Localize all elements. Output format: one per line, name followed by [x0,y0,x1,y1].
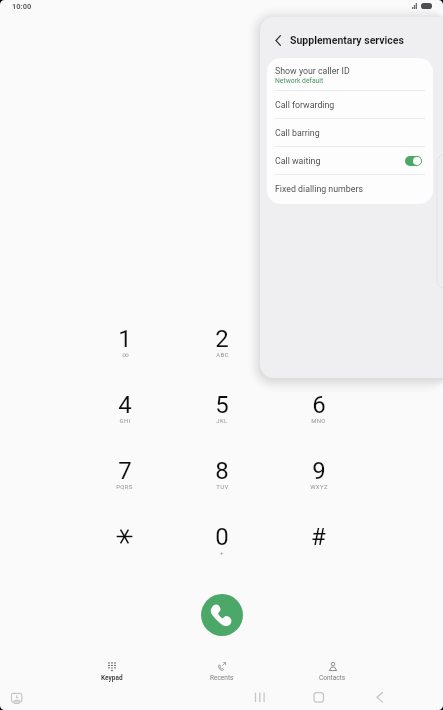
staticText: Call forwarding [275,100,335,110]
staticText: 10:00 [12,2,32,11]
staticText: 8 [215,457,229,485]
staticText: WXYZ [310,483,328,490]
staticText: 4 [118,391,132,419]
staticText: Show your caller ID [275,66,350,76]
staticText: # [311,523,326,551]
staticText: 0 [215,523,229,551]
button[interactable]: Back [269,31,287,49]
button[interactable]: 6 [270,391,367,457]
staticText: JKL [216,417,228,424]
staticText: Network default [275,77,324,85]
button[interactable]: Call waiting toggle [405,156,422,166]
button[interactable]: Call forwarding [275,91,425,118]
button[interactable]: Call [201,594,243,636]
button[interactable]: 5 [173,391,270,457]
staticText: GHI [119,417,131,424]
staticText: Call barring [275,128,320,138]
button[interactable]: 2 [173,325,270,391]
staticText: 6 [312,391,326,419]
staticText: 5 [215,391,229,419]
button[interactable]: Show your caller ID [275,60,425,90]
button[interactable]: # [270,523,367,589]
button[interactable]: Keypad [56,662,167,690]
button[interactable]: Contacts [277,662,387,690]
button[interactable]: 1 [76,325,173,391]
staticText: Fixed dialling numbers [275,184,363,194]
staticText: 1 [118,325,132,353]
staticText: Contacts [319,674,346,682]
button[interactable]: Call barring [275,119,425,146]
staticText: ABC [216,351,229,358]
staticText: PQRS [116,483,133,490]
button[interactable]: 4 [76,391,173,457]
staticText: Call waiting [275,156,321,166]
button[interactable]: Call waiting [275,147,425,174]
button[interactable]: 7 [76,457,173,523]
button[interactable]: Fixed dialling numbers [275,175,425,202]
staticText: 2 [215,325,229,353]
button[interactable]: 9 [270,457,367,523]
staticText: MNO [311,417,326,424]
staticText: Recents [210,674,234,682]
staticText: ∞ [122,351,129,358]
button[interactable]: Recents [167,662,277,690]
staticText: + [220,549,224,556]
button[interactable]: 3 [270,325,367,391]
staticText: Supplementary services [290,34,404,46]
staticText: 9 [312,457,326,485]
button[interactable] [76,523,173,589]
staticText: TUV [216,483,229,490]
staticText: Keypad [101,674,123,682]
button[interactable]: 8 [173,457,270,523]
button[interactable]: 0 [173,523,270,589]
staticText: 7 [118,457,132,485]
